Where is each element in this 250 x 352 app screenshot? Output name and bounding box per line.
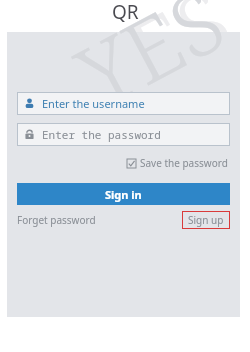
staticText: Save the password — [140, 156, 228, 170]
button[interactable]: Password — [17, 123, 230, 146]
staticText: Enter the password — [42, 127, 161, 142]
staticText: Sign up — [188, 213, 224, 227]
staticText: Enter the username — [42, 96, 145, 111]
other: Password — [24, 129, 35, 140]
staticText: YES — [64, 0, 250, 133]
staticText: Sign in — [105, 187, 142, 202]
button[interactable]: Forget password — [17, 211, 96, 229]
button[interactable]: Save the password — [125, 154, 230, 172]
button[interactable]: Username — [17, 92, 230, 115]
staticText: QR — [112, 0, 139, 25]
other: Username — [24, 98, 35, 109]
staticText: YES — [57, 0, 243, 133]
button[interactable]: Sign in — [17, 183, 230, 205]
button[interactable]: Sign up — [182, 211, 230, 229]
staticText: Forget password — [17, 213, 96, 227]
